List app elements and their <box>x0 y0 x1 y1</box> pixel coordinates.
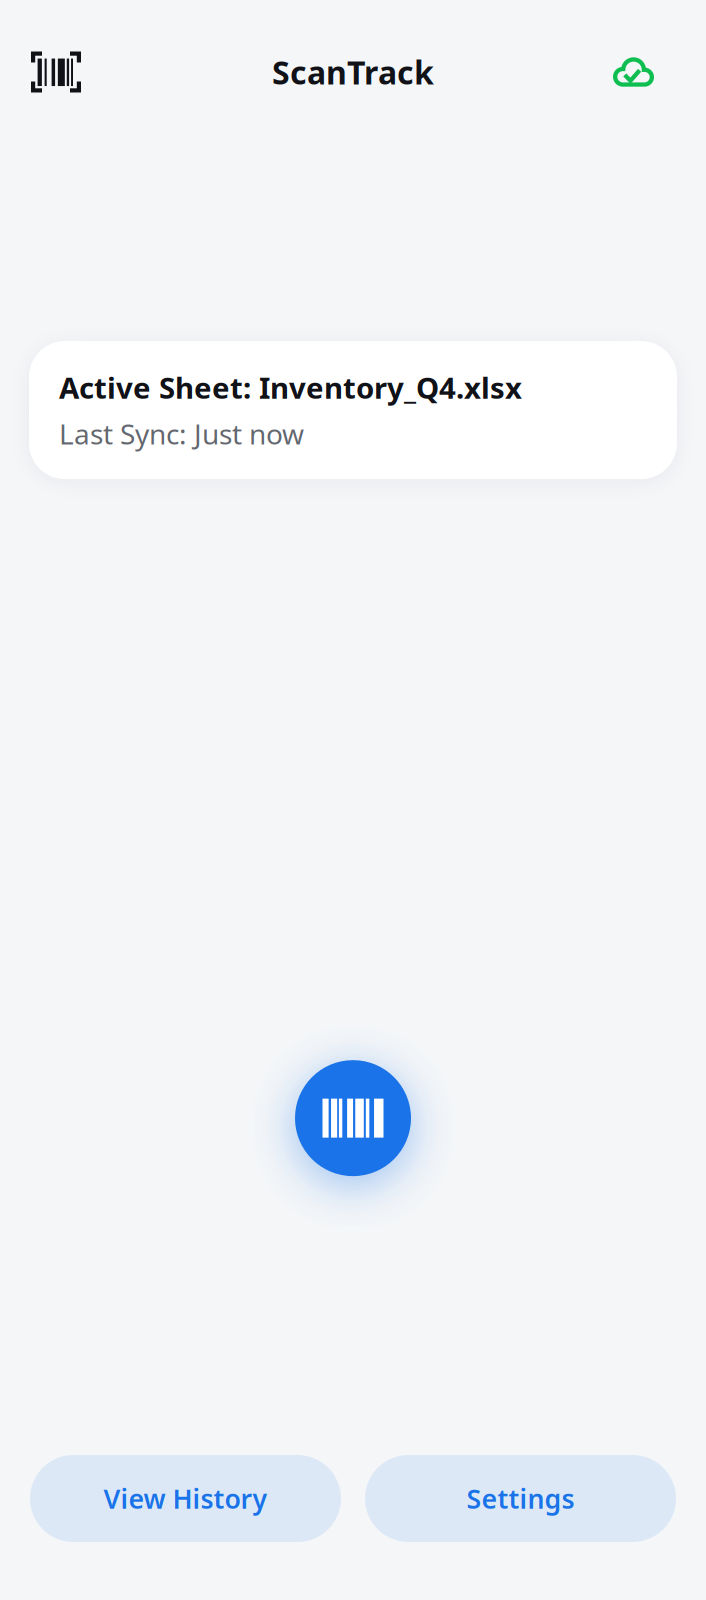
staticText: Last Sync: Just now <box>59 415 304 452</box>
staticText: Settings <box>466 1481 574 1516</box>
button[interactable]: View History <box>30 1455 341 1542</box>
button[interactable]: Scan barcode <box>31 51 81 92</box>
button[interactable]: Scan <box>295 1060 411 1176</box>
staticText: ScanTrack <box>272 51 434 93</box>
staticText: View History <box>103 1481 267 1516</box>
staticText: Active Sheet: Inventory_Q4.xlsx <box>59 368 522 407</box>
button[interactable]: Sync status <box>613 56 654 87</box>
button[interactable]: Settings <box>365 1455 676 1542</box>
